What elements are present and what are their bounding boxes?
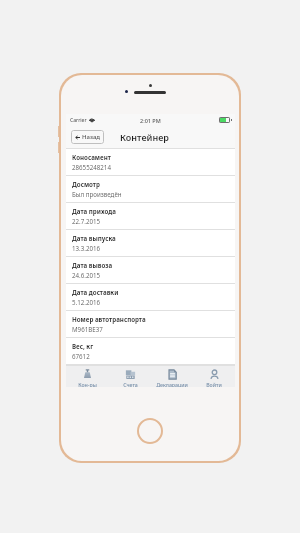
button[interactable]: Дата выпуска — [66, 230, 235, 257]
button[interactable]: Назад — [71, 130, 104, 144]
staticText: Номер автотранспорта — [72, 315, 146, 323]
staticText: Назад — [82, 133, 100, 141]
other: Invoices — [125, 369, 136, 380]
staticText: Коносамент — [72, 153, 111, 161]
button[interactable]: Вес, кг — [66, 338, 235, 365]
other: Sign in — [209, 369, 220, 380]
staticText: Счета — [123, 381, 138, 387]
staticText: Досмотр — [72, 180, 100, 188]
staticText: Вес, кг — [72, 342, 94, 350]
staticText: M961BE37 — [72, 325, 103, 333]
staticText: 13.3.2016 — [72, 244, 101, 252]
staticText: 22.7.2015 — [72, 217, 101, 225]
button[interactable]: Номер автотранспорта — [66, 311, 235, 338]
button[interactable]: Sign in — [193, 366, 235, 387]
staticText: 28655248214 — [72, 163, 111, 171]
staticText: Контейнер — [120, 131, 169, 143]
button[interactable]: Declarations — [151, 366, 193, 387]
other: Home — [137, 418, 163, 444]
staticText: Дата выпуска — [72, 234, 116, 242]
staticText: Декларации — [156, 381, 188, 387]
button[interactable]: Коносамент — [66, 149, 235, 176]
staticText: Дата прихода — [72, 207, 116, 215]
staticText: Дата доставки — [72, 288, 119, 296]
button[interactable]: Дата вывоза — [66, 257, 235, 284]
staticText: 2:01 PM — [140, 117, 161, 124]
button[interactable]: Досмотр — [66, 176, 235, 203]
staticText: Был произведён — [72, 190, 122, 198]
staticText: Carrier — [70, 117, 87, 124]
button[interactable]: Invoices — [109, 366, 151, 387]
staticText: Войти — [206, 381, 222, 387]
other: Declarations — [167, 369, 178, 380]
staticText: 67612 — [72, 352, 90, 360]
button[interactable]: Containers — [66, 366, 109, 387]
button[interactable]: Дата доставки — [66, 284, 235, 311]
staticText: 5.12.2016 — [72, 298, 101, 306]
staticText: Кон-ры — [78, 381, 97, 387]
other: Containers — [82, 369, 93, 380]
button[interactable]: Дата прихода — [66, 203, 235, 230]
staticText: Дата вывоза — [72, 261, 113, 269]
staticText: 24.6.2015 — [72, 271, 101, 279]
